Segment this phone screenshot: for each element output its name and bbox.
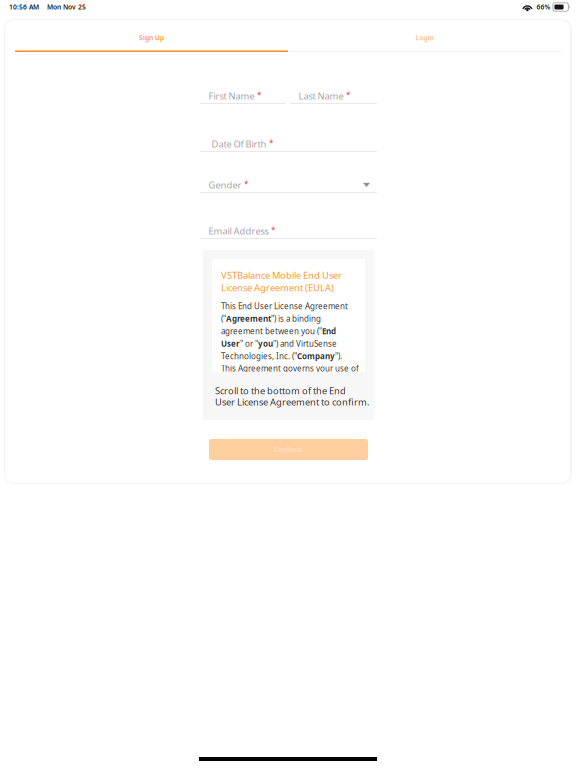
staticText: * [269, 138, 273, 148]
staticText: * [244, 179, 248, 189]
staticText: 66% [536, 3, 550, 11]
staticText: User License Agreement to confirm. [215, 396, 370, 408]
staticText: Technologies, Inc. ("Company"). [221, 351, 342, 361]
staticText: Sign Up [139, 33, 164, 42]
button[interactable]: Last Name [290, 89, 377, 104]
staticText: 10:56 AM [9, 3, 39, 11]
staticText: This Agreement governs your use of [221, 363, 359, 374]
staticText: Date Of Birth [211, 138, 266, 150]
staticText: Email Address [208, 225, 268, 237]
staticText: * [271, 225, 275, 235]
staticText: Scroll to the bottom of the End [215, 384, 346, 397]
button[interactable]: Sign Up [15, 21, 288, 52]
staticText: User" or "you") and VirtuSense [221, 338, 337, 349]
staticText: agreement between you ("End [221, 326, 336, 336]
button[interactable]: Email Address [200, 224, 377, 239]
staticText: License Agreement (EULA) [221, 281, 334, 294]
staticText: * [346, 90, 350, 100]
button[interactable]: Gender [200, 178, 377, 193]
staticText: This End User License Agreement [221, 301, 348, 311]
staticText: Login [415, 33, 433, 42]
staticText: * [257, 90, 261, 100]
button[interactable]: Date Of Birth [200, 137, 377, 152]
staticText: Gender [208, 179, 241, 191]
staticText: Last Name [298, 90, 343, 102]
staticText: ("Agreement") is a binding [221, 313, 321, 324]
staticText: VSTBalance Mobile End User [221, 269, 342, 281]
staticText: Mon Nov 25 [47, 3, 86, 11]
button[interactable]: Login [288, 21, 561, 52]
button[interactable]: First Name [200, 89, 286, 104]
staticText: First Name [208, 90, 254, 102]
staticText: Continue [274, 445, 302, 454]
button[interactable]: Continue [209, 439, 368, 460]
